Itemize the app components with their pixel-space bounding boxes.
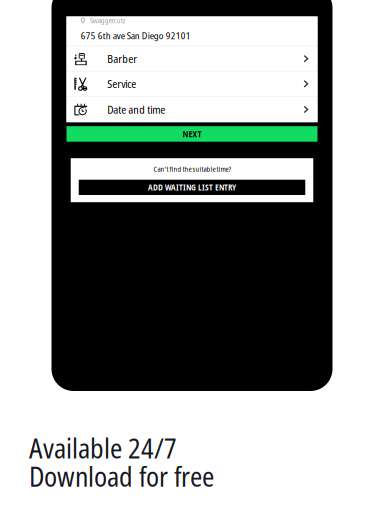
button[interactable]: Barber [66, 46, 317, 71]
staticText: Barber [107, 51, 137, 66]
button[interactable]: ADD WAITING LIST ENTRY [79, 180, 305, 195]
staticText: Swaggercutz [90, 15, 126, 25]
staticText: Service [107, 76, 136, 91]
staticText: Can't find the suitable time? [153, 164, 230, 174]
button[interactable]: Date and time [66, 97, 317, 122]
staticText: 675 6th ave San Diego 92101 [81, 29, 191, 42]
staticText: Available 24/7 [29, 430, 177, 466]
button[interactable]: Service [66, 72, 317, 96]
staticText: NEXT [182, 128, 201, 140]
staticText: Date and time [107, 102, 165, 117]
staticText: Download for free [29, 458, 214, 495]
staticText: ADD WAITING LIST ENTRY [148, 182, 236, 193]
button[interactable]: NEXT [66, 126, 317, 142]
